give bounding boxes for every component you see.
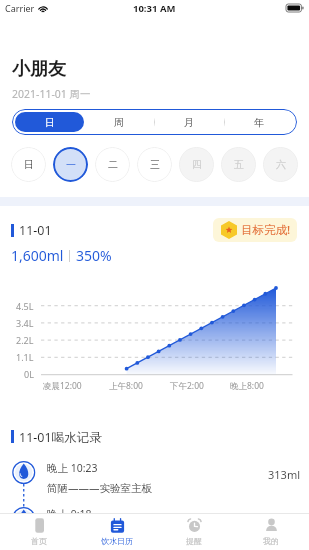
staticText: 11-01喝水记录 [19,429,102,443]
staticText: 下午2:00 [170,380,204,392]
button[interactable]: 四 [179,147,214,182]
staticText: 一 [66,158,76,171]
staticText: 周 [114,116,124,129]
staticText: 五 [234,158,244,171]
staticText: 晚上 9:18 [47,507,92,521]
other: Home [32,518,47,533]
button[interactable]: 月 [154,112,224,132]
staticText: 提醒 [186,536,202,546]
button[interactable]: 六 [263,147,298,182]
staticText: 日 [24,158,34,171]
other: Profile [264,518,279,533]
staticText: Carrier [5,2,35,14]
button[interactable]: 一 [53,147,88,182]
button[interactable]: 晚上 10:23 [0,461,309,507]
staticText: 三 [150,158,160,171]
button[interactable]: 三 [137,147,172,182]
staticText: 首页 [31,536,47,546]
staticText: 二 [108,158,118,171]
button[interactable]: Profile [232,514,309,550]
staticText: 目标完成! [241,222,291,238]
staticText: 2021-11-01 周一 [12,87,91,101]
staticText: 350% [76,246,112,265]
button[interactable]: Home [0,514,78,550]
button[interactable]: Water calendar [78,514,155,550]
staticText: 晚上 10:23 [47,461,98,475]
staticText: 晚上8:00 [230,380,264,392]
staticText: 月 [184,116,194,129]
staticText: 10:31 AM [133,2,176,15]
staticText: 凌晨12:00 [43,380,82,392]
staticText: 313ml [268,467,300,482]
other: Water calendar [110,518,125,533]
button[interactable]: 日 [11,147,46,182]
staticText: 1,600ml [11,246,64,265]
button[interactable]: 周 [84,112,154,132]
staticText: 六 [276,158,286,171]
staticText: 我的 [263,536,279,546]
button[interactable]: 年 [224,112,294,132]
staticText: 简陋———实验室主板 [47,481,152,495]
staticText: 饮水日历 [101,536,133,546]
button[interactable]: Reminders [155,514,232,550]
button[interactable]: 五 [221,147,256,182]
button[interactable]: 日 [15,112,84,132]
staticText: 小朋友 [12,58,66,81]
staticText: 1.1L [16,351,34,363]
staticText: 四 [192,158,202,171]
other: Reminders [187,518,202,533]
staticText: 上午8:00 [109,380,143,392]
staticText: 3.4L [16,317,34,329]
staticText: 年 [254,116,264,129]
button[interactable]: 目标完成! [221,218,291,242]
staticText: 日 [45,116,55,129]
staticText: 0L [24,368,34,380]
staticText: 2.2L [16,334,34,346]
staticText: 4.5L [16,300,34,312]
button[interactable]: 二 [95,147,130,182]
staticText: 11-01 [19,222,52,239]
button[interactable]: 晚上 9:18 [0,507,309,550]
